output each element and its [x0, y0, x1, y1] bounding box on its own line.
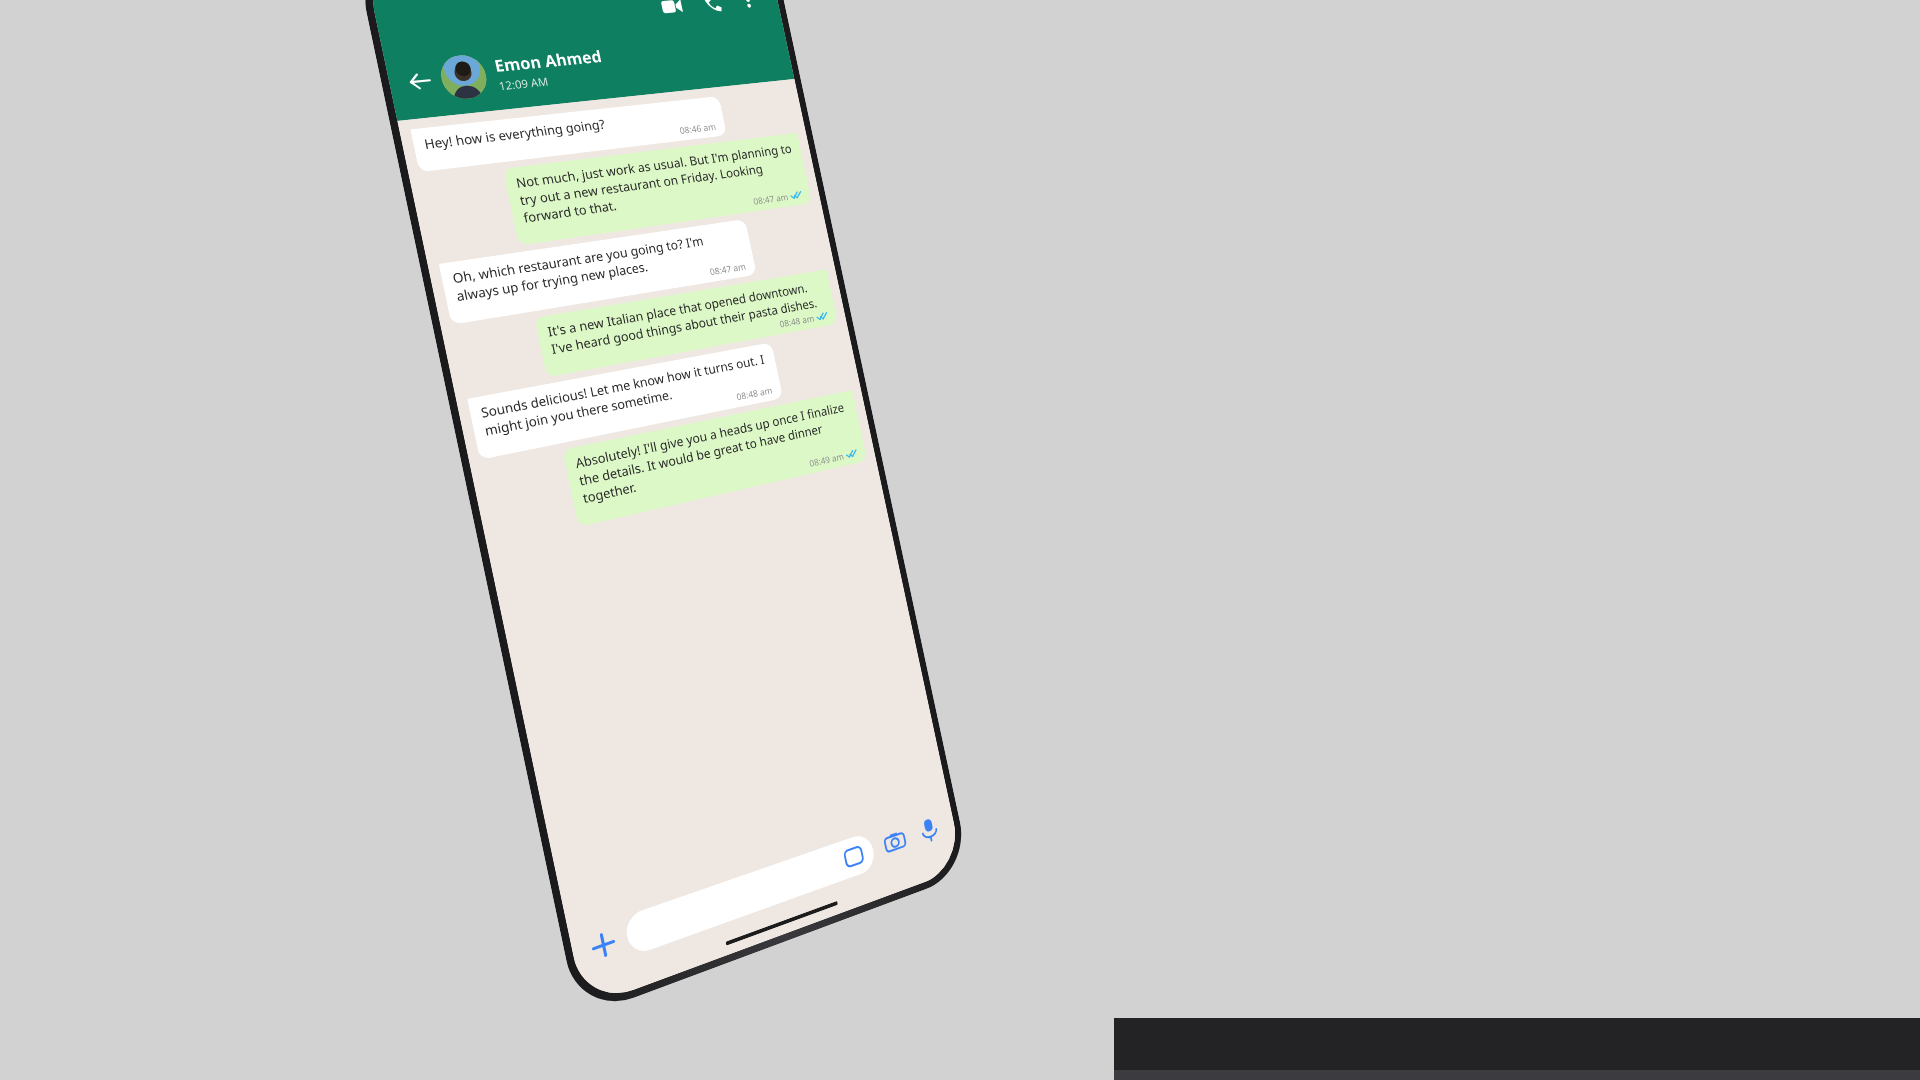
button[interactable]: Hey! how is everything going?	[410, 96, 727, 172]
button[interactable]: Voice call	[693, 0, 731, 20]
staticText: Sounds delicious! Let me know how it tur…	[479, 351, 771, 440]
button[interactable]: Sounds delicious! Let me know how it tur…	[467, 342, 783, 460]
button[interactable]: More options	[729, 0, 766, 17]
staticText: 08:46 am	[678, 120, 717, 136]
button[interactable]: It's a new Italian place that opened dow…	[534, 269, 838, 377]
staticText: 08:47 am	[752, 190, 789, 207]
button[interactable]: Attach	[579, 918, 627, 972]
button[interactable]: Back	[398, 27, 792, 105]
staticText: 12:09 AM	[497, 73, 549, 93]
button[interactable]: Voice message	[909, 806, 949, 854]
staticText: 08:48 am	[778, 312, 815, 329]
button[interactable]	[623, 831, 877, 957]
staticText: 08:48 am	[735, 383, 773, 402]
button[interactable]: Oh, which restaurant are you going to? I…	[439, 219, 757, 325]
button[interactable]: Camera	[875, 818, 915, 866]
staticText: Not much, just work as usual. But I'm pl…	[514, 140, 800, 227]
staticText: 08:47 am	[708, 260, 747, 277]
staticText: Hey! how is everything going?	[423, 116, 606, 153]
staticText: Emon Ahmed	[492, 45, 604, 77]
staticText: Oh, which restaurant are you going to? I…	[451, 227, 744, 305]
button[interactable]: Absolutely! I'll give you a heads up onc…	[562, 390, 867, 527]
staticText: Absolutely! I'll give you a heads up onc…	[574, 398, 855, 507]
button[interactable]: Video call	[652, 0, 691, 24]
button[interactable]: Back	[399, 63, 441, 100]
button[interactable]: Not much, just work as usual. But I'm pl…	[503, 133, 812, 246]
staticText: It's a new Italian place that opened dow…	[546, 277, 826, 358]
staticText: 08:49 am	[808, 450, 845, 469]
